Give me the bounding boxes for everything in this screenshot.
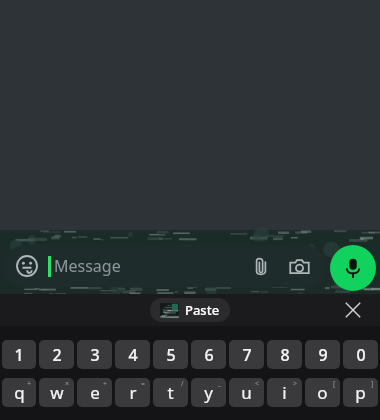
button[interactable]: Paste [150,298,230,322]
staticText: 1 [14,344,24,366]
staticText: t [167,381,174,404]
staticText: p [355,381,366,404]
staticText: 7 [242,344,252,366]
button[interactable]: 2 [39,340,74,369]
staticText: ] [371,379,374,389]
staticText: Paste [185,301,220,319]
staticText: 5 [166,344,176,366]
button[interactable]: Emoji [14,253,40,279]
button[interactable]: w [39,378,74,407]
staticText: 0 [356,344,366,366]
staticText: 9 [318,344,328,366]
button[interactable]: Attach [247,252,275,280]
button[interactable]: 6 [191,340,226,369]
button[interactable]: 0 [343,340,378,369]
button[interactable]: o [305,378,340,407]
staticText: i [282,381,287,404]
button[interactable]: Camera [285,252,313,280]
button[interactable]: 8 [267,340,302,369]
staticText: 2 [52,344,62,366]
staticText: y [204,381,213,404]
button[interactable]: 4 [115,340,150,369]
staticText: + [27,379,32,389]
button[interactable]: p [343,378,378,407]
button[interactable]: e [77,378,112,407]
staticText: u [241,381,252,404]
button[interactable]: y [191,378,226,407]
staticText: × [65,379,70,389]
button[interactable]: 3 [77,340,112,369]
button[interactable]: 1 [2,340,36,369]
staticText: 3 [90,344,100,366]
staticText: 8 [280,344,290,366]
staticText: q [14,381,25,404]
button[interactable]: Close clipboard suggestion [338,295,368,325]
button[interactable]: t [153,378,188,407]
button[interactable]: r [115,378,150,407]
staticText: 4 [128,344,138,366]
staticText: < [255,379,260,389]
staticText: / [181,379,184,389]
staticText: r [129,381,137,404]
staticText: 6 [204,344,214,366]
button[interactable]: Emoji [4,245,325,287]
staticText: w [50,381,64,404]
button[interactable]: 5 [153,340,188,369]
staticText: = [141,379,146,389]
button[interactable]: i [267,378,302,407]
button[interactable]: 9 [305,340,340,369]
button[interactable]: 7 [229,340,264,369]
staticText: [ [333,379,336,389]
staticText: Message [54,255,121,277]
staticText: e [90,381,100,404]
button[interactable]: Voice message [330,245,376,291]
staticText: _ [218,379,222,389]
staticText: > [293,379,298,389]
button[interactable]: q [2,378,36,407]
staticText: ÷ [103,379,108,389]
button[interactable]: u [229,378,264,407]
staticText: o [317,381,328,404]
